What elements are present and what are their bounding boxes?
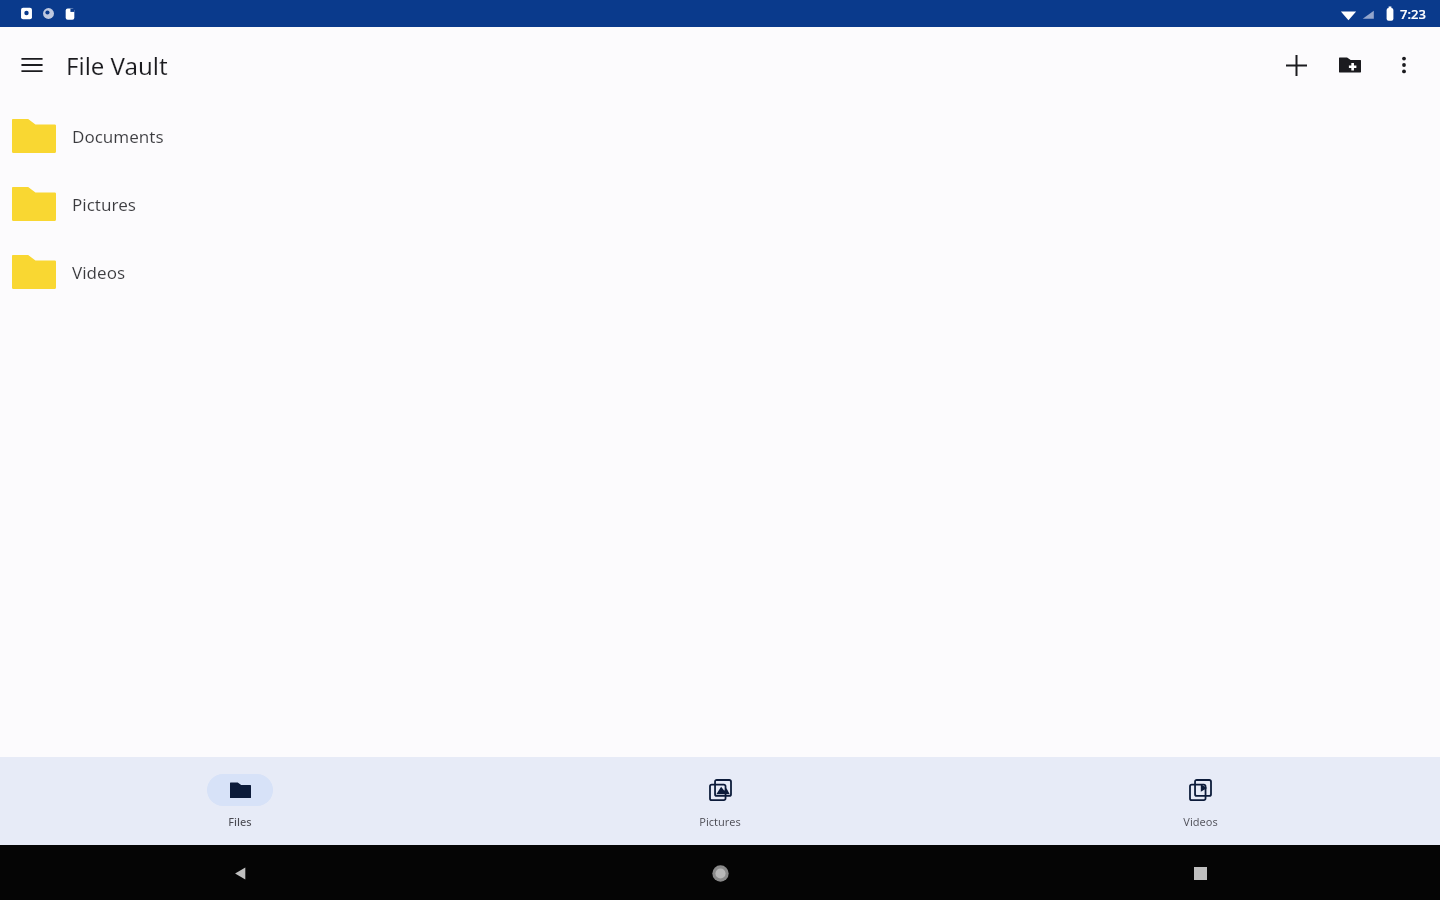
staticText: Files — [228, 814, 252, 829]
button[interactable]: Home — [697, 850, 743, 896]
button[interactable]: Videos — [960, 757, 1440, 845]
button[interactable]: Open navigation menu — [8, 41, 56, 89]
staticText: Videos — [1183, 814, 1218, 829]
button[interactable]: Videos — [0, 238, 1440, 306]
button[interactable]: Back — [217, 850, 263, 896]
staticText: File Vault — [66, 49, 168, 82]
button[interactable]: Files — [0, 757, 480, 845]
button[interactable]: Documents — [0, 102, 1440, 170]
staticText: Pictures — [699, 814, 741, 829]
staticText: Videos — [72, 261, 126, 284]
staticText: Documents — [72, 125, 164, 148]
button[interactable]: Create new folder — [1326, 41, 1374, 89]
button[interactable]: Pictures — [0, 170, 1440, 238]
button[interactable]: Recent apps — [1177, 850, 1223, 896]
button[interactable]: Pictures — [480, 757, 960, 845]
button[interactable]: Add — [1272, 41, 1320, 89]
staticText: Pictures — [72, 193, 136, 216]
staticText: 7:23 — [1400, 5, 1426, 23]
button[interactable]: More options — [1380, 41, 1428, 89]
